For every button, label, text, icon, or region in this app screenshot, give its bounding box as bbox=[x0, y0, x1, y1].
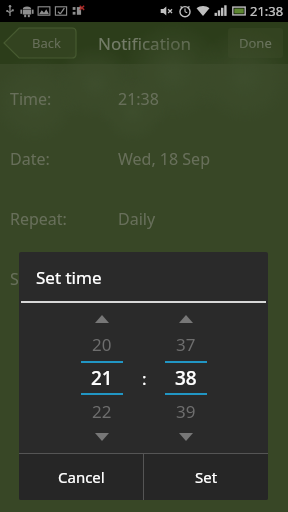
button[interactable]: 38 bbox=[157, 363, 215, 393]
staticText: 20 bbox=[92, 333, 112, 356]
staticText: Repeat: bbox=[10, 208, 67, 230]
staticText: 38 bbox=[175, 365, 197, 391]
staticText: 21:38 bbox=[250, 2, 284, 20]
staticText: Notification bbox=[98, 32, 191, 55]
button[interactable]: Done bbox=[228, 28, 283, 58]
button[interactable]: Decrement bbox=[157, 427, 215, 447]
staticText: Set time bbox=[36, 266, 102, 289]
button[interactable]: Set bbox=[144, 454, 268, 500]
staticText: : bbox=[142, 367, 147, 390]
button[interactable]: Time: bbox=[0, 84, 288, 114]
staticText: Set bbox=[195, 467, 218, 487]
button[interactable]: Increment bbox=[73, 309, 131, 329]
button[interactable]: 21 bbox=[73, 363, 131, 393]
staticText: 22 bbox=[92, 400, 112, 423]
staticText: Wed, 18 Sep bbox=[118, 148, 288, 170]
staticText: 21 bbox=[91, 365, 113, 391]
button[interactable]: Date: bbox=[0, 144, 288, 174]
staticText: 21:38 bbox=[118, 88, 288, 110]
button[interactable]: Cancel bbox=[19, 454, 143, 500]
staticText: Time: bbox=[10, 88, 52, 110]
staticText: Sound: bbox=[10, 268, 63, 290]
button[interactable]: Sound: bbox=[0, 264, 288, 294]
staticText: 37 bbox=[176, 333, 196, 356]
staticText: Back bbox=[32, 34, 61, 52]
button[interactable]: Repeat: bbox=[0, 204, 288, 234]
button[interactable]: Back bbox=[4, 28, 76, 58]
staticText bbox=[118, 268, 288, 290]
staticText: Done bbox=[239, 34, 272, 52]
button[interactable]: Decrement bbox=[73, 427, 131, 447]
staticText: Cancel bbox=[58, 467, 105, 487]
staticText: Date: bbox=[10, 148, 50, 170]
staticText: 39 bbox=[176, 400, 196, 423]
button[interactable]: Increment bbox=[157, 309, 215, 329]
staticText: Daily bbox=[118, 208, 288, 230]
